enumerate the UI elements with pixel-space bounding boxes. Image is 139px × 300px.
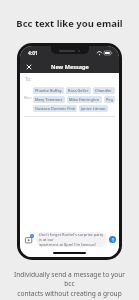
staticText: Individually send a message to your bcc … <box>10 270 129 300</box>
staticText: Don't forget Rachel's surprise party is … <box>39 232 104 247</box>
staticText: 4:01 <box>28 50 38 57</box>
button[interactable]: Gustavo Dominic Pink <box>33 105 77 112</box>
staticText: Bcc text like you email <box>16 17 123 30</box>
staticText: Mika Harrington <box>69 97 100 102</box>
staticText: To: <box>25 76 31 82</box>
button[interactable]: Peg Lewis <box>104 96 115 103</box>
button[interactable]: Mika Harrington <box>67 96 102 103</box>
button[interactable]: Chandler Bing <box>93 87 115 94</box>
staticText: Phoebe Buffay <box>35 88 62 93</box>
staticText: Mary Timmons <box>35 97 63 102</box>
staticText: Peg Lewis <box>106 97 113 102</box>
staticText: Chandler Bing <box>95 88 113 93</box>
button[interactable]: Janice Litman <box>79 105 108 112</box>
button[interactable]: Send <box>109 236 116 243</box>
button[interactable]: Don't forget Rachel's surprise party is … <box>36 232 107 247</box>
button[interactable]: Mary Timmons <box>33 96 65 103</box>
staticText: Bcc: <box>24 95 32 101</box>
button[interactable]: Close <box>23 61 34 72</box>
staticText: New Message <box>51 63 89 71</box>
staticText: Gustavo Dominic Pink <box>35 106 75 111</box>
button[interactable]: Add photo <box>23 234 34 245</box>
staticText: Ross Geller <box>68 88 89 93</box>
button[interactable]: Ross Geller <box>66 87 91 94</box>
staticText: Janice Litman <box>81 106 106 111</box>
button[interactable]: Phoebe Buffay <box>33 87 64 94</box>
